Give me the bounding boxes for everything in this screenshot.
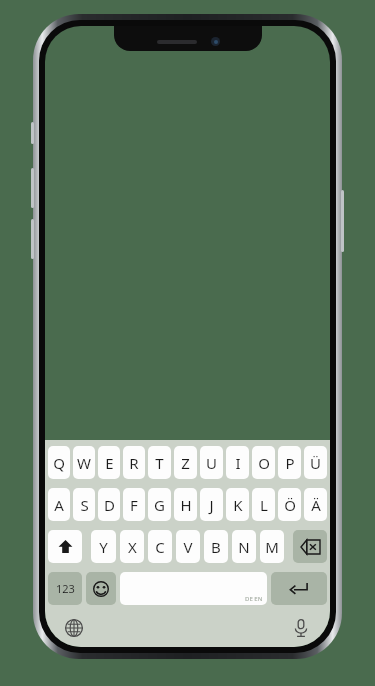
staticText: E	[105, 453, 114, 473]
button[interactable]: O	[252, 446, 275, 479]
button[interactable]: N	[232, 530, 256, 563]
button[interactable]: Ö	[278, 488, 301, 521]
staticText: DE EN	[245, 595, 263, 603]
button[interactable]: P	[278, 446, 301, 479]
button[interactable]: Voice input	[286, 613, 316, 643]
staticText: T	[155, 453, 164, 473]
button[interactable]: R	[123, 446, 145, 479]
button[interactable]: B	[204, 530, 228, 563]
staticText: Ä	[311, 495, 321, 515]
button[interactable]: A	[48, 488, 70, 521]
staticText: M	[265, 537, 279, 557]
staticText: Ü	[310, 453, 321, 473]
button[interactable]: F	[123, 488, 145, 521]
staticText: W	[77, 453, 91, 473]
button[interactable]: I	[226, 446, 249, 479]
staticText: K	[233, 495, 243, 515]
button[interactable]: Y	[91, 530, 116, 563]
button[interactable]: Space	[120, 572, 267, 605]
button[interactable]: S	[73, 488, 95, 521]
button[interactable]: E	[98, 446, 120, 479]
staticText: 123	[56, 581, 75, 596]
staticText: A	[54, 495, 64, 515]
button[interactable]: 123	[48, 572, 82, 605]
button[interactable]: Emoji	[86, 572, 116, 605]
button[interactable]: G	[148, 488, 171, 521]
staticText: G	[154, 495, 165, 515]
button[interactable]: Return	[271, 572, 327, 605]
staticText: J	[209, 495, 214, 515]
staticText: O	[258, 453, 270, 473]
staticText: X	[128, 537, 137, 557]
staticText: H	[180, 495, 192, 515]
button[interactable]: K	[226, 488, 249, 521]
button[interactable]: Z	[174, 446, 197, 479]
button[interactable]: Ä	[304, 488, 327, 521]
staticText: P	[285, 453, 295, 473]
staticText: N	[238, 537, 250, 557]
staticText: U	[206, 453, 217, 473]
staticText: F	[130, 495, 138, 515]
staticText: C	[155, 537, 165, 557]
staticText: V	[183, 537, 193, 557]
staticText: Ö	[284, 495, 296, 515]
button[interactable]: Backspace	[293, 530, 327, 563]
button[interactable]: M	[260, 530, 284, 563]
button[interactable]: V	[176, 530, 200, 563]
button[interactable]: Ü	[304, 446, 327, 479]
button[interactable]: L	[252, 488, 275, 521]
button[interactable]: Change language	[59, 613, 89, 643]
button[interactable]: C	[148, 530, 172, 563]
button[interactable]: J	[200, 488, 223, 521]
staticText: B	[211, 537, 221, 557]
staticText: S	[80, 495, 89, 515]
staticText: D	[104, 495, 115, 515]
button[interactable]: D	[98, 488, 120, 521]
staticText: Z	[181, 453, 190, 473]
staticText: Y	[99, 537, 108, 557]
button[interactable]: U	[200, 446, 223, 479]
button[interactable]: Shift	[48, 530, 82, 563]
button[interactable]: X	[120, 530, 144, 563]
staticText: R	[129, 453, 139, 473]
button[interactable]: H	[174, 488, 197, 521]
staticText: L	[260, 495, 268, 515]
button[interactable]: Q	[48, 446, 70, 479]
button[interactable]: W	[73, 446, 95, 479]
button[interactable]: T	[148, 446, 171, 479]
staticText: I	[235, 453, 241, 473]
staticText: Q	[53, 453, 65, 473]
